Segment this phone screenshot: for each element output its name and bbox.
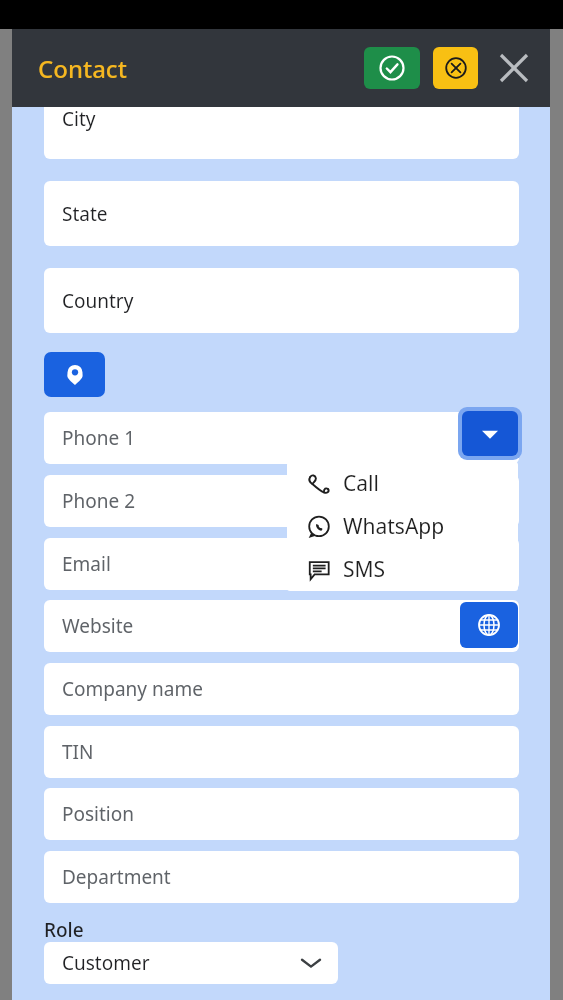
button[interactable]: Email <box>44 538 519 590</box>
button[interactable]: Country <box>44 268 519 333</box>
staticText: WhatsApp <box>343 512 445 541</box>
button[interactable]: Save <box>364 47 420 89</box>
staticText: Contact <box>38 52 127 85</box>
staticText: Country <box>62 288 134 314</box>
staticText: Company name <box>62 676 203 702</box>
staticText: State <box>62 201 108 227</box>
button[interactable]: SMS <box>287 548 518 591</box>
staticText: Role <box>44 917 84 943</box>
button[interactable]: Position <box>44 788 519 840</box>
staticText: Phone 1 <box>62 425 135 451</box>
button[interactable]: Phone actions <box>458 407 522 460</box>
button[interactable]: TIN <box>44 726 519 778</box>
staticText: SMS <box>343 555 386 584</box>
button[interactable]: Company name <box>44 663 519 715</box>
staticText: TIN <box>62 739 94 765</box>
staticText: City <box>62 106 96 132</box>
button[interactable]: Phone 2 <box>44 475 519 527</box>
staticText: Position <box>62 801 134 827</box>
staticText: Call <box>343 469 379 498</box>
staticText: Email <box>62 551 111 577</box>
button[interactable]: State <box>44 181 519 246</box>
button[interactable]: WhatsApp <box>287 505 518 548</box>
button[interactable]: Cancel <box>433 47 478 89</box>
button[interactable]: Call <box>287 462 518 505</box>
button[interactable]: Phone 1 <box>44 412 519 464</box>
button[interactable]: Department <box>44 851 519 903</box>
button[interactable]: City <box>44 100 519 159</box>
staticText: Website <box>62 613 134 639</box>
button[interactable]: Pick location <box>44 352 105 397</box>
staticText: Phone 2 <box>62 488 135 514</box>
button[interactable]: Open website <box>460 602 518 648</box>
staticText: Customer <box>62 950 150 976</box>
button[interactable]: Close <box>492 46 536 90</box>
staticText: Department <box>62 864 171 890</box>
button[interactable]: Customer <box>44 942 338 984</box>
button[interactable]: Website <box>44 600 519 652</box>
